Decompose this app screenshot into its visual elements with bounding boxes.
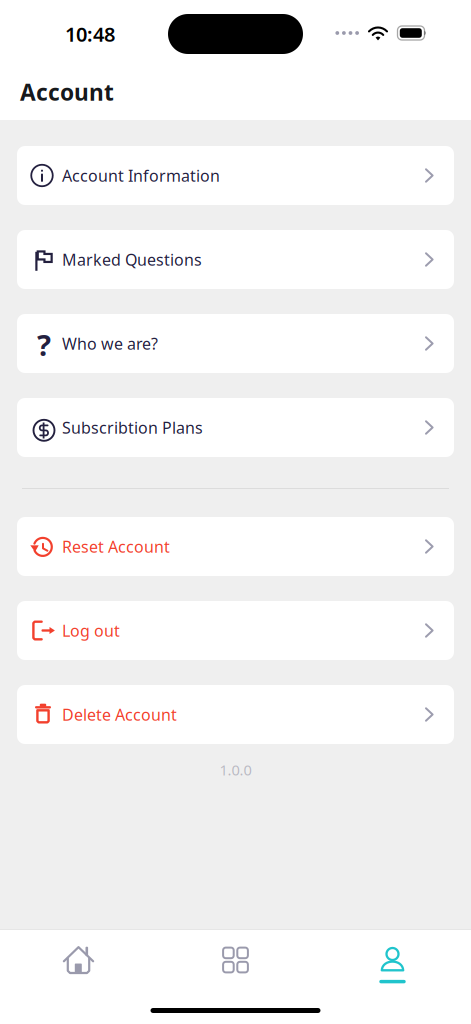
button[interactable]: Account — [314, 945, 471, 995]
button[interactable]: Delete Account — [17, 685, 454, 744]
button[interactable]: Account Information — [17, 146, 454, 205]
staticText: Marked Questions — [62, 249, 202, 270]
button[interactable]: Home — [0, 945, 157, 995]
button[interactable]: Marked Questions — [17, 230, 454, 289]
staticText: ? — [37, 325, 51, 364]
staticText: Subscribtion Plans — [62, 417, 203, 438]
staticText: Account — [20, 77, 114, 107]
button[interactable]: ? — [17, 314, 454, 373]
staticText: Delete Account — [62, 704, 177, 725]
staticText: Reset Account — [62, 536, 170, 557]
staticText: 10:48 — [65, 21, 115, 47]
button[interactable]: Reset Account — [17, 517, 454, 576]
staticText: 1.0.0 — [219, 760, 251, 779]
staticText: Account Information — [62, 165, 220, 186]
staticText: Who we are? — [62, 333, 158, 354]
button[interactable]: Subscribtion Plans — [17, 398, 454, 457]
staticText: Log out — [62, 620, 120, 641]
button[interactable]: Log out — [17, 601, 454, 660]
button[interactable]: Categories — [157, 945, 314, 995]
